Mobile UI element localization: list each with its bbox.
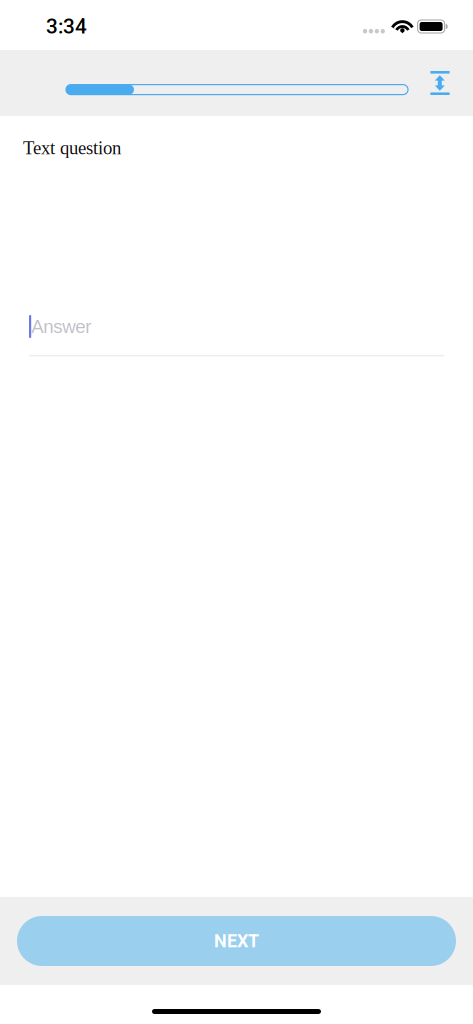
staticText: NEXT (214, 930, 259, 952)
button[interactable]: Answer (29, 315, 444, 356)
button[interactable]: NEXT (17, 916, 456, 966)
button[interactable]: Resize text (419, 57, 461, 109)
staticText: 3:34 (46, 14, 87, 39)
staticText: Text question (23, 138, 121, 158)
staticText: Answer (31, 316, 91, 337)
